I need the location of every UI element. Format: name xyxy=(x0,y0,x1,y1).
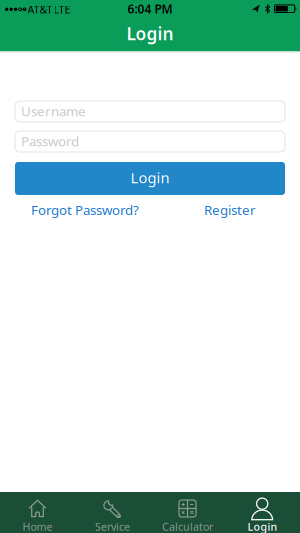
button[interactable]: Register xyxy=(204,201,256,219)
staticText: Username xyxy=(21,102,86,120)
textField[interactable]: Username xyxy=(15,103,285,120)
staticText: Service xyxy=(95,519,130,533)
staticText: Login xyxy=(130,168,169,187)
staticText: Password xyxy=(15,133,73,150)
staticText: Login xyxy=(126,22,173,45)
secureTextField[interactable]: Password xyxy=(15,133,285,150)
button[interactable]: Home xyxy=(0,492,75,533)
staticText: AT&T xyxy=(27,2,52,16)
staticText: Register xyxy=(204,201,256,219)
staticText: LTE xyxy=(53,2,70,16)
staticText: Calculator xyxy=(162,519,213,533)
button[interactable]: Login xyxy=(225,492,300,533)
button[interactable]: Calculator xyxy=(150,492,225,533)
button[interactable]: Forgot Password? xyxy=(31,201,139,219)
staticText: Home xyxy=(22,519,52,533)
staticText: Forgot Password? xyxy=(31,201,139,219)
button[interactable]: Service xyxy=(75,492,150,533)
staticText: Password xyxy=(21,132,79,150)
staticText: Login xyxy=(247,519,277,533)
staticText: 6:04 PM xyxy=(127,1,172,17)
button[interactable]: Login xyxy=(15,162,285,195)
staticText: Username xyxy=(15,103,80,120)
